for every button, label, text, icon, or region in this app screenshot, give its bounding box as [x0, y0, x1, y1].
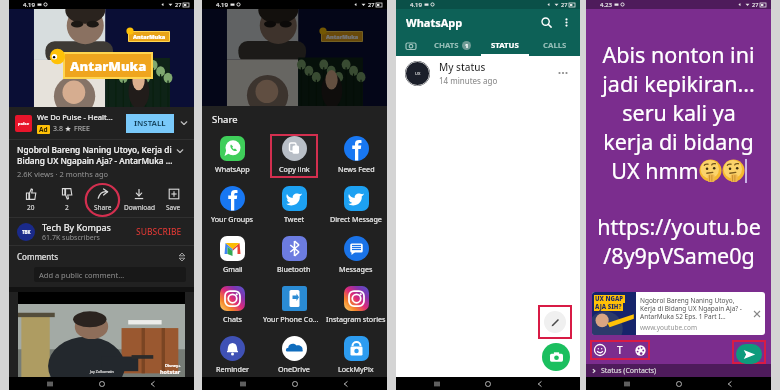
button[interactable]: More options	[556, 12, 576, 32]
staticText: UX	[415, 71, 421, 76]
button[interactable]: Recents	[426, 377, 448, 390]
button[interactable]: Color	[630, 340, 650, 360]
button[interactable]: Expand ad	[178, 117, 190, 129]
staticText: pulse	[18, 121, 30, 127]
button[interactable]: Home	[668, 377, 690, 390]
button[interactable]: LockMyPix	[325, 333, 387, 377]
staticText: Chats	[223, 314, 243, 324]
button[interactable]: Download	[121, 186, 157, 214]
staticText: UX hmm	[611, 156, 699, 185]
button[interactable]: Recents	[232, 377, 254, 390]
staticText: Share	[212, 113, 238, 126]
button[interactable]: Back	[142, 377, 164, 390]
staticText: Comments	[17, 251, 59, 262]
staticText: OneDrive	[278, 364, 310, 374]
staticText: 27	[368, 1, 375, 8]
staticText: /8y9pVSame0g	[603, 241, 755, 270]
staticText: 2.6K views · 2 months ago	[17, 169, 109, 179]
staticText: Your Phone Com…	[263, 314, 325, 324]
staticText: TBK	[22, 229, 31, 235]
button[interactable]: WhatsApp	[202, 133, 263, 183]
button[interactable]: SUBSCRIBE	[132, 222, 186, 242]
staticText: SUBSCRIBE	[136, 226, 182, 238]
button[interactable]: TBK	[9, 218, 194, 245]
button[interactable]: Your Groups	[202, 183, 263, 233]
button[interactable]: INSTALL	[126, 114, 174, 133]
staticText: kerja di bidang	[603, 127, 754, 156]
button[interactable]: UX	[396, 56, 580, 90]
staticText: Direct Message	[330, 214, 382, 224]
button[interactable]: Recents	[39, 377, 61, 390]
button[interactable]: Camera	[542, 343, 570, 371]
button[interactable]: Share	[85, 186, 121, 214]
staticText: WhatsApp	[215, 164, 250, 174]
button[interactable]: Camera	[396, 35, 425, 56]
button[interactable]: Emoji	[590, 340, 610, 360]
button[interactable]: Instagram stories	[325, 283, 387, 333]
button[interactable]: STATUS	[480, 35, 530, 56]
button[interactable]: Your Phone Com…	[263, 283, 325, 333]
staticText: 3.8	[53, 124, 63, 134]
staticText: Abis nonton ini	[602, 40, 755, 69]
staticText: T	[617, 343, 623, 357]
button[interactable]: UX NGAP	[592, 292, 765, 335]
button[interactable]: Font	[610, 340, 630, 360]
button[interactable]: CHATS	[425, 35, 480, 56]
button[interactable]: Status (Contacts)	[586, 364, 771, 377]
staticText: Messages	[339, 264, 373, 274]
button[interactable]: Status options	[555, 65, 571, 81]
staticText: Status (Contacts)	[601, 366, 657, 376]
button[interactable]: pulse	[9, 107, 194, 139]
staticText: FREE	[74, 124, 90, 134]
button[interactable]: Save	[157, 186, 190, 214]
button[interactable]: CALLS	[530, 35, 580, 56]
staticText: jadi kepikiran...	[602, 69, 755, 98]
button[interactable]: Bluetooth	[263, 233, 325, 283]
button[interactable]: News Feed	[325, 133, 387, 183]
staticText: 61.7K subscribers	[42, 233, 100, 243]
button[interactable]: Home	[477, 377, 499, 390]
button[interactable]: Home	[284, 377, 306, 390]
button[interactable]: Comments	[9, 246, 194, 287]
staticText: CALLS	[543, 40, 567, 51]
button[interactable]: Copy link	[263, 133, 325, 183]
staticText: 27	[752, 1, 759, 8]
button[interactable]: Write status	[544, 311, 566, 333]
staticText: UX NGAP	[595, 295, 624, 303]
staticText: 14 minutes ago	[439, 75, 498, 86]
staticText: https://youtu.be	[597, 212, 761, 241]
button[interactable]: Messages	[325, 233, 387, 283]
staticText: Bluetooth	[277, 264, 311, 274]
button[interactable]: Home	[91, 377, 113, 390]
staticText: INSTALL	[134, 118, 166, 129]
button[interactable]: Ngobrol Bareng Naning Utoyo, Kerja di Bi…	[9, 140, 194, 183]
staticText: Reminder	[216, 364, 249, 374]
button[interactable]: Send	[736, 344, 762, 364]
staticText: Tweet	[284, 214, 305, 224]
button[interactable]: Back	[529, 377, 551, 390]
button[interactable]: Chats	[202, 283, 263, 333]
button[interactable]: Recents	[616, 377, 638, 390]
button[interactable]: Tweet	[263, 183, 325, 233]
button[interactable]: Direct Message	[325, 183, 387, 233]
staticText: 27	[561, 1, 568, 8]
staticText: LockMyPix	[338, 364, 374, 374]
staticText: seru kali ya	[622, 98, 736, 127]
staticText: 4.19	[23, 1, 35, 9]
staticText: My status	[439, 60, 486, 74]
button[interactable]: Search	[536, 12, 556, 32]
staticText: 4.23	[600, 1, 612, 9]
staticText: Share	[94, 203, 112, 212]
staticText: www.youtube.com	[640, 323, 697, 332]
button[interactable]: Reminder	[202, 333, 263, 377]
button[interactable]: 2	[49, 186, 85, 214]
button[interactable]: Back	[335, 377, 357, 390]
button[interactable]: Back	[719, 377, 741, 390]
staticText: 20	[27, 203, 35, 212]
button[interactable]: Remove preview	[749, 306, 765, 322]
staticText: Disney+	[165, 363, 181, 368]
staticText: Download	[124, 203, 155, 212]
button[interactable]: OneDrive	[263, 333, 325, 377]
button[interactable]: Gmail	[202, 233, 263, 283]
button[interactable]: 20	[13, 186, 49, 214]
